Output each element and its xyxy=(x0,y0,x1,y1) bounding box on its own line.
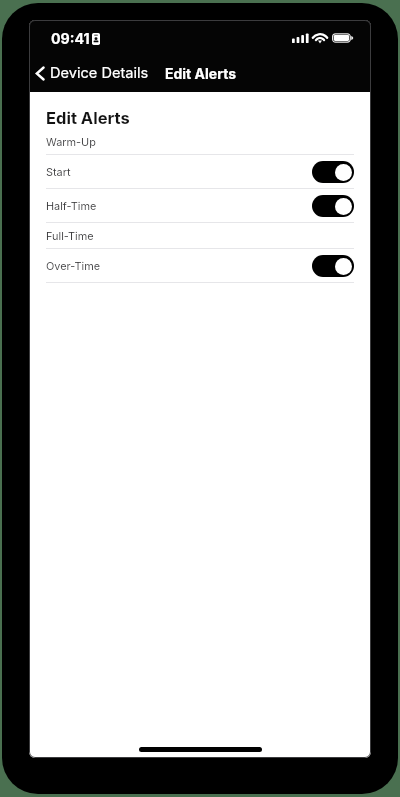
button[interactable]: Device Details xyxy=(32,60,152,86)
staticText: Start xyxy=(46,165,71,178)
button[interactable]: Warm-Up xyxy=(46,129,354,154)
staticText: Device Details xyxy=(50,64,149,82)
staticText: Edit Alerts xyxy=(46,108,130,128)
staticText: 09:41 xyxy=(51,30,90,47)
button[interactable]: Full-Time xyxy=(46,223,354,248)
staticText: Warm-Up xyxy=(46,135,96,148)
staticText: Edit Alerts xyxy=(165,65,236,82)
button[interactable]: Alert toggle, on xyxy=(312,195,354,217)
staticText: Full-Time xyxy=(46,229,94,242)
button[interactable]: Alert toggle, on xyxy=(312,161,354,183)
button[interactable]: Half-Time xyxy=(46,189,354,222)
button[interactable]: Alert toggle, on xyxy=(312,255,354,277)
button[interactable]: Over-Time xyxy=(46,249,354,282)
staticText: Half-Time xyxy=(46,199,97,212)
button[interactable]: Start xyxy=(46,155,354,188)
staticText: Over-Time xyxy=(46,259,101,272)
